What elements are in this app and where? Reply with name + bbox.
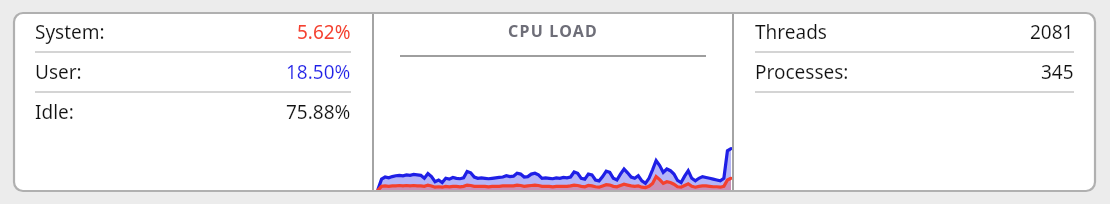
other: CPU load graph — [378, 145, 731, 191]
staticText: System: — [35, 19, 105, 45]
staticText: User: — [35, 59, 82, 85]
staticText: Idle: — [35, 99, 74, 125]
staticText: Threads — [755, 19, 827, 45]
button[interactable]: System: — [35, 13, 351, 53]
staticText: Processes: — [755, 59, 849, 85]
staticText: CPU LOAD — [508, 20, 598, 42]
staticText: 345 — [1041, 59, 1074, 85]
button[interactable]: Threads — [755, 13, 1074, 53]
button[interactable]: User: — [35, 53, 351, 93]
staticText: 2081 — [1030, 19, 1074, 45]
staticText: 18.50% — [286, 59, 351, 85]
button[interactable]: Idle: — [35, 93, 351, 131]
staticText: 5.62% — [297, 19, 351, 45]
button[interactable]: Processes: — [755, 53, 1074, 93]
staticText: 75.88% — [286, 99, 351, 125]
button[interactable]: CPU LOAD — [374, 13, 732, 49]
